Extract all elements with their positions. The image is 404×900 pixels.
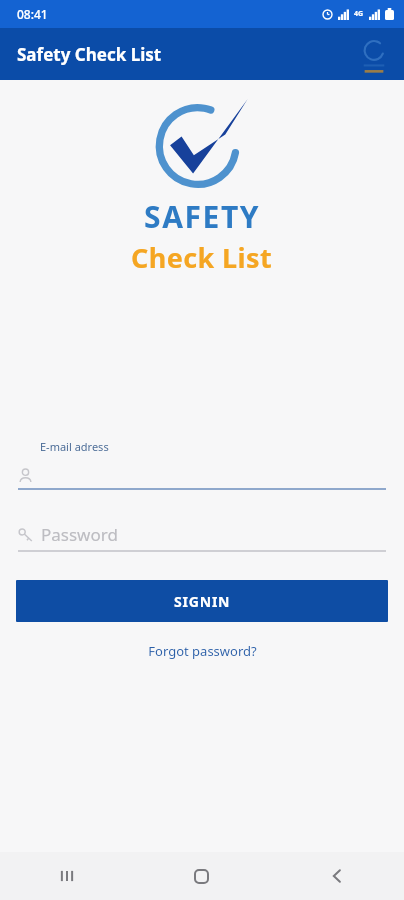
staticText: 4G — [354, 9, 364, 19]
staticText: 08:41 — [17, 6, 48, 22]
button[interactable]: Back — [269, 852, 404, 900]
button[interactable]: Forgot password? — [140, 640, 265, 662]
button[interactable]: Recent apps — [0, 852, 134, 900]
button[interactable]: Home — [134, 852, 269, 900]
staticText: Check List — [131, 239, 273, 276]
button[interactable]: Safety Check List logo — [356, 36, 392, 72]
button[interactable]: SIGNIN — [16, 580, 388, 622]
button[interactable] — [18, 462, 386, 488]
staticText: E-mail adress — [40, 439, 109, 454]
staticText: SAFETY — [144, 196, 261, 237]
button[interactable]: Password — [18, 520, 386, 548]
staticText: Forgot password? — [148, 642, 257, 660]
staticText: SIGNIN — [174, 592, 231, 611]
staticText: Safety Check List — [17, 43, 162, 66]
staticText: Password — [41, 523, 118, 546]
